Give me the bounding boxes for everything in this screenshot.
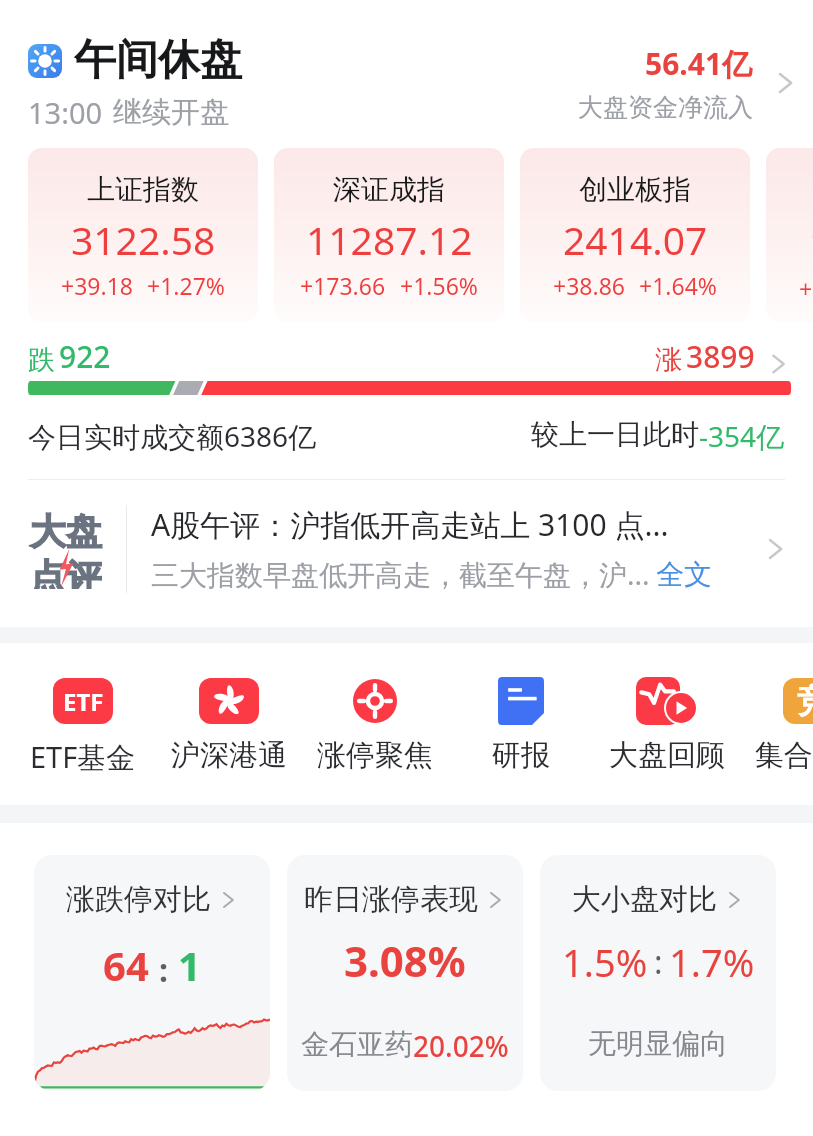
staticText: 研报 xyxy=(492,737,550,774)
staticText: -354亿 xyxy=(699,417,785,455)
button[interactable]: 创业板指 xyxy=(520,148,750,322)
staticText: 涨停聚焦 xyxy=(317,737,433,774)
button[interactable]: 昨日涨停表现 xyxy=(287,855,523,1091)
staticText: 跌 xyxy=(28,343,55,377)
button[interactable]: 大盘 xyxy=(0,480,813,627)
button[interactable]: 涨跌停对比 xyxy=(34,855,270,1091)
staticText: 昨日涨停表现 xyxy=(304,881,478,918)
staticText: ETF基金 xyxy=(30,737,136,777)
staticText: A股午评：沪指低开高走站上 3100 点... xyxy=(151,504,669,545)
staticText: 3122.58 xyxy=(71,213,216,266)
button[interactable]: 竞 xyxy=(740,677,813,774)
button[interactable]: 大小盘对比 xyxy=(540,855,776,1091)
staticText: 无明显偏向 xyxy=(588,1026,728,1061)
staticText: 涨 xyxy=(655,343,682,377)
staticText: 56.41亿 xyxy=(645,43,753,84)
button[interactable]: 午间休盘 xyxy=(0,0,813,138)
staticText: 20.02% xyxy=(413,1027,509,1065)
button[interactable]: 沪深港通 xyxy=(156,677,302,774)
staticText: 点评 xyxy=(30,555,102,589)
staticText: 继续开盘 xyxy=(113,94,229,131)
staticText: 64 xyxy=(103,938,149,992)
staticText: +1.56% xyxy=(400,270,478,301)
staticText: 金石亚药 xyxy=(301,1027,413,1062)
staticText: 沪深港通 xyxy=(171,737,287,774)
staticText: 全文 xyxy=(656,557,712,592)
staticText: 较上一日此时 xyxy=(531,417,699,452)
staticText: +38.86 xyxy=(553,270,625,301)
staticText: 涨跌停对比 xyxy=(66,881,211,918)
button[interactable]: 深证成指 xyxy=(274,148,504,322)
staticText: 集合竞价 xyxy=(755,737,813,774)
button[interactable]: 上证指数 xyxy=(28,148,258,322)
button[interactable]: 涨停聚焦 xyxy=(302,677,448,774)
staticText: 1 xyxy=(178,938,201,992)
staticText: 午间休盘 xyxy=(74,34,242,87)
staticText: +1.27% xyxy=(147,270,225,301)
staticText: 大盘资金净流入 xyxy=(578,92,753,123)
staticText: 大小盘对比 xyxy=(572,881,717,918)
staticText: 2414.07 xyxy=(563,213,708,266)
staticText: 三大指数早盘低开高走，截至午盘，沪... xyxy=(151,555,650,593)
staticText: 创业板指 xyxy=(579,172,691,207)
staticText: 大盘回顾 xyxy=(609,737,725,774)
staticText: 1.7% xyxy=(669,936,755,988)
staticText: 大盘 xyxy=(30,509,102,554)
staticText: 3899 xyxy=(686,336,755,377)
staticText: : xyxy=(654,940,663,984)
staticText: 922 xyxy=(59,336,111,377)
staticText: +173.66 xyxy=(300,270,386,301)
staticText: 竞 xyxy=(797,681,813,721)
button[interactable]: 科创50 xyxy=(766,148,813,322)
staticText: +12.11 xyxy=(799,273,813,304)
staticText: 上证指数 xyxy=(87,172,199,207)
staticText: 1.5% xyxy=(562,936,648,988)
button[interactable]: 大盘回顾 xyxy=(594,677,740,774)
staticText: 今日实时成交额6386亿 xyxy=(28,417,317,455)
staticText: 1080.21 xyxy=(809,216,813,269)
button[interactable]: 研报 xyxy=(448,677,594,774)
staticText: 深证成指 xyxy=(333,172,445,207)
staticText: +39.18 xyxy=(61,270,133,301)
staticText: : xyxy=(159,948,168,992)
button[interactable]: ETF xyxy=(10,677,156,777)
staticText: +1.64% xyxy=(639,270,717,301)
staticText: 3.08% xyxy=(344,932,466,989)
button[interactable]: 跌 xyxy=(0,322,813,395)
staticText: 11287.12 xyxy=(306,213,473,266)
staticText: 13:00 xyxy=(28,93,103,132)
staticText: ETF xyxy=(63,685,104,718)
